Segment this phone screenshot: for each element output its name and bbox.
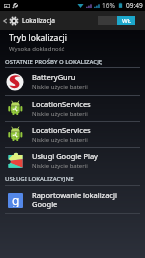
staticText: 09:49	[126, 1, 143, 10]
staticText: Raportowanie lokalizacji Google	[32, 190, 117, 209]
button[interactable]: LocationServices	[0, 96, 145, 121]
button[interactable]: Back	[0, 11, 19, 30]
staticText: WŁ	[122, 17, 131, 25]
staticText: Wysoka dokładność	[9, 45, 65, 53]
staticText: Niskie użycie baterii	[32, 83, 88, 91]
staticText: Niskie użycie baterii	[32, 136, 88, 144]
staticText: Niskie użycie baterii	[32, 162, 88, 170]
button[interactable]: LocationServices	[0, 122, 145, 147]
button[interactable]: Tryb lokalizacji	[0, 30, 145, 56]
button[interactable]: BatteryGuru	[0, 68, 145, 95]
staticText: BatteryGuru	[32, 72, 76, 82]
staticText: g	[12, 193, 20, 207]
button[interactable]: g	[0, 186, 145, 213]
staticText: Lokalizacja	[22, 16, 55, 25]
staticText: Niskie użycie baterii	[32, 110, 88, 118]
staticText: LocationServices	[32, 99, 91, 109]
staticText: Tryb lokalizacji	[9, 32, 67, 44]
staticText: OSTATNIE PROŚBY O LOKALIZACJĘ	[5, 58, 103, 66]
staticText: 16%	[102, 1, 115, 10]
button[interactable]: Usługi Google Play	[0, 148, 145, 173]
staticText: Usługi Google Play	[32, 151, 98, 161]
staticText: LocationServices	[32, 125, 91, 135]
button[interactable]: Location on/off	[98, 16, 135, 25]
staticText: USŁUGI LOKALIZACYJNE	[5, 175, 74, 183]
